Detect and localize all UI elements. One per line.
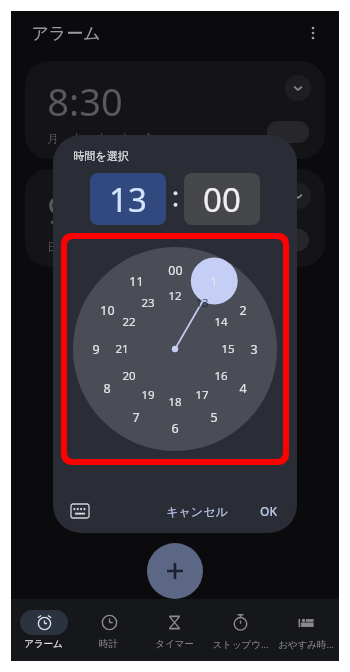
staticText: 11 — [129, 273, 144, 290]
staticText: ストップウ… — [212, 638, 269, 651]
button[interactable]: 8:30 — [25, 61, 325, 159]
staticText: OK — [260, 503, 277, 519]
button[interactable]: 00 — [73, 247, 277, 451]
staticText: おやすみ時… — [278, 638, 334, 651]
staticText: 16 — [214, 368, 228, 384]
staticText: 18 — [168, 394, 182, 410]
button[interactable]: Expand — [285, 183, 311, 209]
button[interactable]: Add alarm — [147, 543, 203, 599]
staticText: 2 — [239, 302, 247, 319]
staticText: 10 — [100, 302, 115, 319]
staticText: 時計 — [99, 638, 118, 650]
button[interactable]: More options — [297, 17, 329, 49]
button[interactable] — [267, 121, 309, 143]
staticText: 13 — [109, 177, 147, 222]
staticText: 17 — [195, 387, 209, 403]
staticText: 8:30 — [47, 75, 123, 127]
staticText: 14 — [214, 314, 228, 330]
staticText: 19 — [141, 387, 155, 403]
button[interactable] — [267, 229, 309, 251]
button[interactable]: タイマー — [141, 599, 207, 661]
staticText: 9:00 — [47, 183, 123, 235]
staticText: 5 — [210, 409, 218, 426]
staticText: 6 — [171, 420, 179, 437]
staticText: 20 — [122, 368, 136, 384]
staticText: 00 — [168, 262, 183, 279]
staticText: 9 — [92, 341, 100, 358]
button[interactable]: 9:00 — [25, 169, 325, 267]
button[interactable]: キャンセル — [156, 498, 238, 525]
staticText: 4 — [239, 380, 247, 397]
button[interactable]: OK — [250, 497, 287, 525]
button[interactable]: 00 — [184, 173, 260, 225]
button[interactable]: Expand — [285, 75, 311, 101]
staticText: 1 — [210, 273, 218, 290]
staticText: タイマー — [155, 638, 194, 650]
staticText: 3 — [250, 341, 258, 358]
staticText: アラーム — [31, 23, 101, 44]
staticText: 23 — [141, 295, 155, 311]
staticText: 12 — [168, 288, 182, 304]
staticText: キャンセル — [166, 504, 228, 519]
staticText: 時間を選択 — [73, 149, 129, 163]
staticText: 21 — [115, 341, 129, 357]
staticText: 月、火、水、木、金 — [47, 131, 155, 146]
staticText: 日、土 — [47, 239, 83, 254]
button[interactable]: ストップウ… — [207, 599, 273, 661]
staticText: 15 — [221, 341, 235, 357]
staticText: 13 — [195, 295, 209, 311]
staticText: アラーム — [24, 638, 63, 650]
button[interactable]: アラーム — [11, 599, 76, 661]
button[interactable]: おやすみ時… — [273, 599, 339, 661]
staticText: 8 — [103, 380, 111, 397]
button[interactable]: Switch to text input — [67, 498, 93, 524]
staticText: 00 — [203, 177, 241, 222]
staticText: 7 — [132, 409, 140, 426]
button[interactable]: 13 — [90, 173, 166, 225]
staticText: 22 — [122, 314, 136, 330]
button[interactable]: 時計 — [76, 599, 141, 661]
